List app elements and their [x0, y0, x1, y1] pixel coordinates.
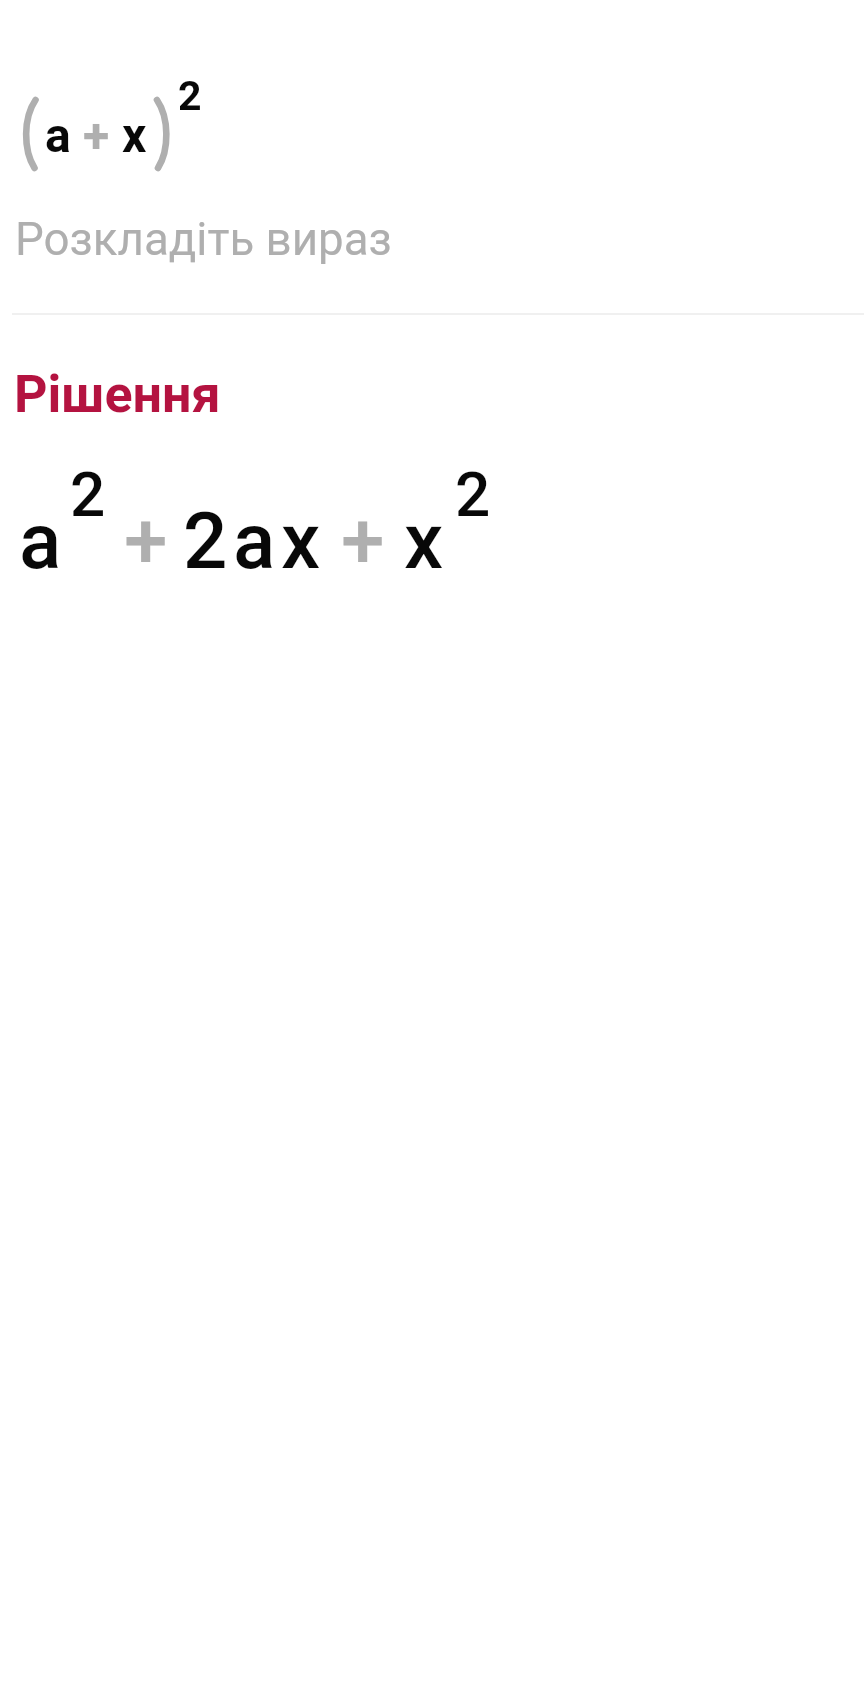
staticText: 2 [178, 72, 202, 120]
staticText: 2 [70, 458, 106, 531]
staticText: a [19, 496, 62, 587]
button[interactable]: (a + x)² — Розкладіть вираз [0, 0, 864, 313]
staticText: + [83, 107, 110, 163]
button[interactable]: Рішення: a² + 2ax + x² [0, 315, 864, 615]
staticText: x [281, 496, 321, 587]
staticText: 2 [183, 496, 228, 587]
staticText: a [233, 496, 276, 587]
staticText: x [122, 107, 147, 163]
staticText: Рішення [14, 364, 221, 425]
staticText: 2 [455, 458, 491, 531]
staticText: Розкладіть вираз [15, 213, 392, 267]
staticText: + [341, 496, 385, 587]
staticText: x [404, 496, 444, 587]
staticText: a [45, 107, 71, 163]
staticText: + [124, 496, 168, 587]
